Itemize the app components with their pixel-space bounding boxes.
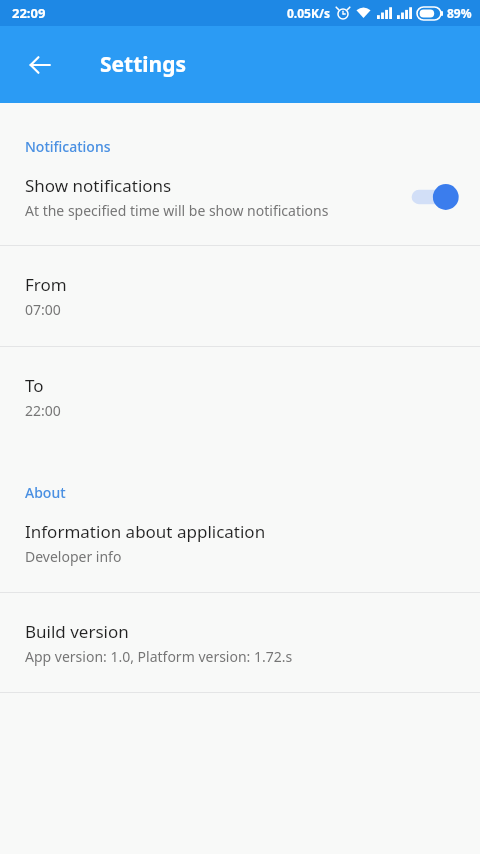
- staticText: To: [25, 374, 44, 397]
- button[interactable]: Build version: [0, 593, 480, 692]
- button[interactable]: Show notifications: [0, 174, 480, 220]
- staticText: Show notifications: [25, 174, 172, 197]
- staticText: Build version: [25, 620, 129, 643]
- button[interactable]: Back: [14, 39, 66, 91]
- staticText: 0.05K/s: [287, 5, 330, 21]
- button[interactable]: Information about application: [0, 520, 480, 592]
- staticText: Notifications: [25, 137, 111, 156]
- staticText: From: [25, 273, 67, 296]
- staticText: Information about application: [25, 520, 266, 543]
- staticText: At the specified time will be show notif…: [25, 201, 329, 220]
- staticText: App version: 1.0, Platform version: 1.72…: [25, 647, 293, 666]
- staticText: Settings: [100, 50, 187, 79]
- button[interactable]: Show notifications toggle: [408, 182, 460, 212]
- staticText: 07:00: [25, 300, 61, 319]
- staticText: 22:00: [25, 401, 61, 420]
- button[interactable]: To: [0, 347, 480, 447]
- staticText: 89%: [447, 5, 472, 21]
- staticText: 22:09: [12, 4, 46, 22]
- staticText: About: [25, 483, 66, 502]
- button[interactable]: From: [0, 246, 480, 346]
- staticText: Developer info: [25, 547, 122, 566]
